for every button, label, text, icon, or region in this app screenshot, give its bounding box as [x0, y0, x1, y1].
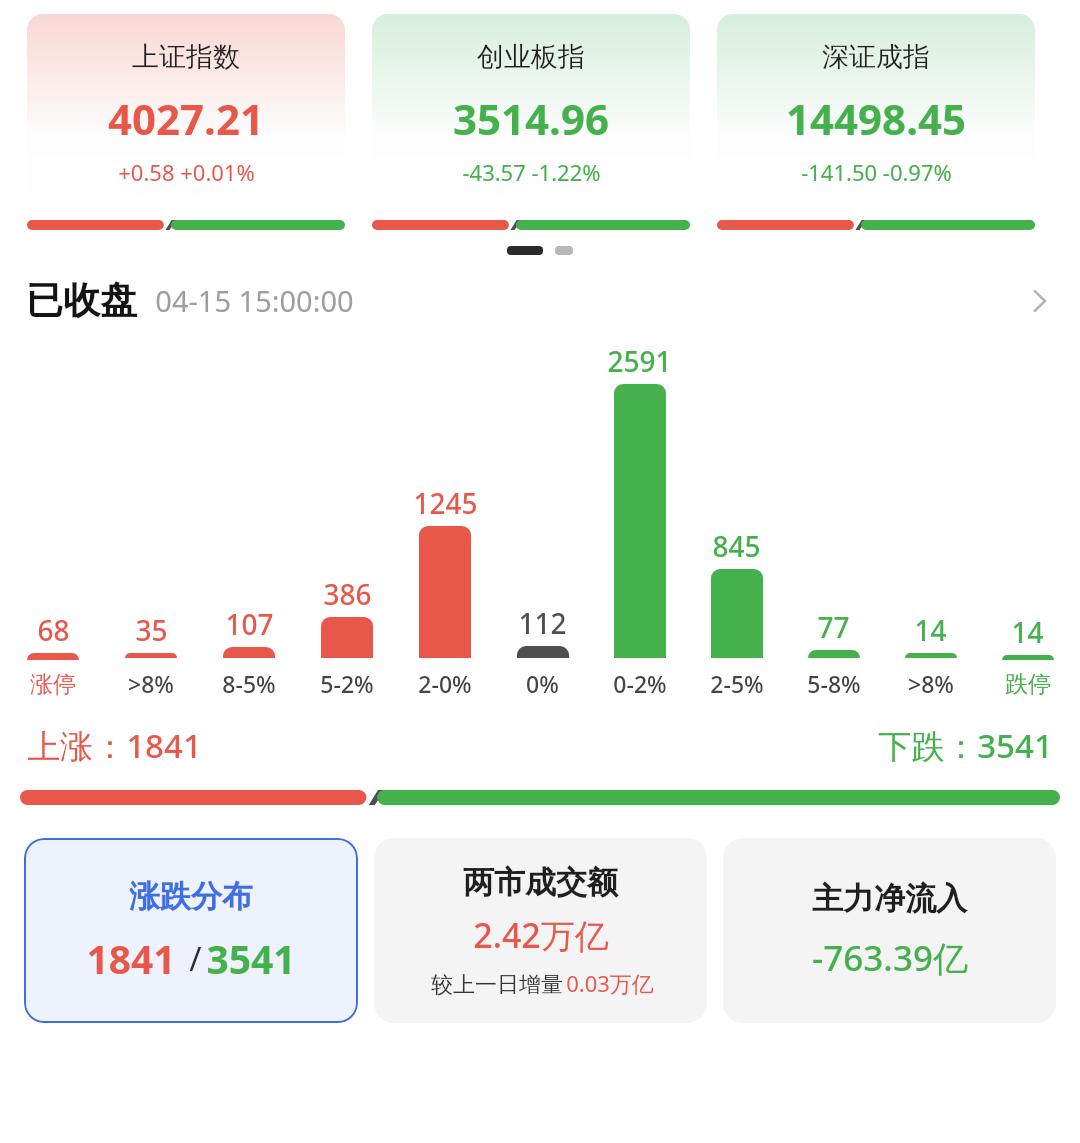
staticText: 2591: [607, 342, 672, 380]
staticText: 跌停: [1005, 670, 1051, 699]
staticText: 77: [817, 608, 850, 646]
staticText: /: [176, 936, 206, 981]
staticText: 两市成交额: [463, 863, 618, 902]
staticText: 14498.45: [786, 90, 966, 147]
staticText: 0.03万亿: [566, 968, 654, 998]
button[interactable]: 涨跌分布: [24, 838, 358, 1023]
staticText: 涨跌分布: [129, 877, 253, 916]
staticText: 较上一日增量: [428, 968, 566, 998]
staticText: 已收盘: [26, 277, 137, 324]
staticText: 上涨：1841: [27, 723, 202, 768]
staticText: 0-2%: [613, 668, 667, 699]
staticText: 4027.21: [108, 90, 264, 147]
staticText: >8%: [128, 668, 174, 699]
staticText: 创业板指: [477, 40, 585, 74]
staticText: 2-5%: [710, 668, 764, 699]
staticText: 35: [135, 611, 168, 649]
button[interactable]: 主力净流入: [723, 838, 1056, 1023]
staticText: 主力净流入: [812, 879, 967, 918]
staticText: 5-2%: [320, 668, 374, 699]
other: Details: [1024, 286, 1054, 316]
staticText: 68: [37, 611, 70, 649]
button[interactable]: 上证指数: [27, 14, 345, 230]
staticText: 深证成指: [822, 40, 930, 74]
staticText: 5-8%: [807, 668, 861, 699]
staticText: 112: [518, 604, 567, 642]
staticText: >8%: [908, 668, 954, 699]
staticText: 0%: [526, 668, 559, 699]
staticText: 下跌：3541: [878, 723, 1053, 768]
staticText: 386: [323, 575, 372, 613]
staticText: 845: [712, 527, 761, 565]
button[interactable]: 深证成指: [717, 14, 1035, 230]
staticText: -763.39亿: [812, 934, 968, 982]
staticText: +0.58 +0.01%: [118, 157, 255, 187]
staticText: 107: [225, 605, 274, 643]
button[interactable]: 两市成交额: [374, 838, 707, 1023]
button[interactable]: 已收盘: [0, 277, 1080, 324]
staticText: 2-0%: [418, 668, 472, 699]
staticText: 上证指数: [132, 40, 240, 74]
staticText: 涨停: [30, 670, 76, 699]
staticText: 1841: [86, 932, 176, 985]
staticText: 04-15 15:00:00: [155, 281, 354, 320]
staticText: 3541: [206, 932, 296, 985]
staticText: 8-5%: [222, 668, 276, 699]
staticText: 14: [914, 611, 947, 649]
staticText: 3514.96: [453, 90, 609, 147]
staticText: 2.42万亿: [473, 912, 609, 958]
staticText: 1245: [413, 484, 478, 522]
staticText: -43.57 -1.22%: [462, 157, 601, 187]
button[interactable]: 创业板指: [372, 14, 690, 230]
staticText: -141.50 -0.97%: [801, 157, 952, 187]
staticText: 14: [1011, 613, 1044, 651]
